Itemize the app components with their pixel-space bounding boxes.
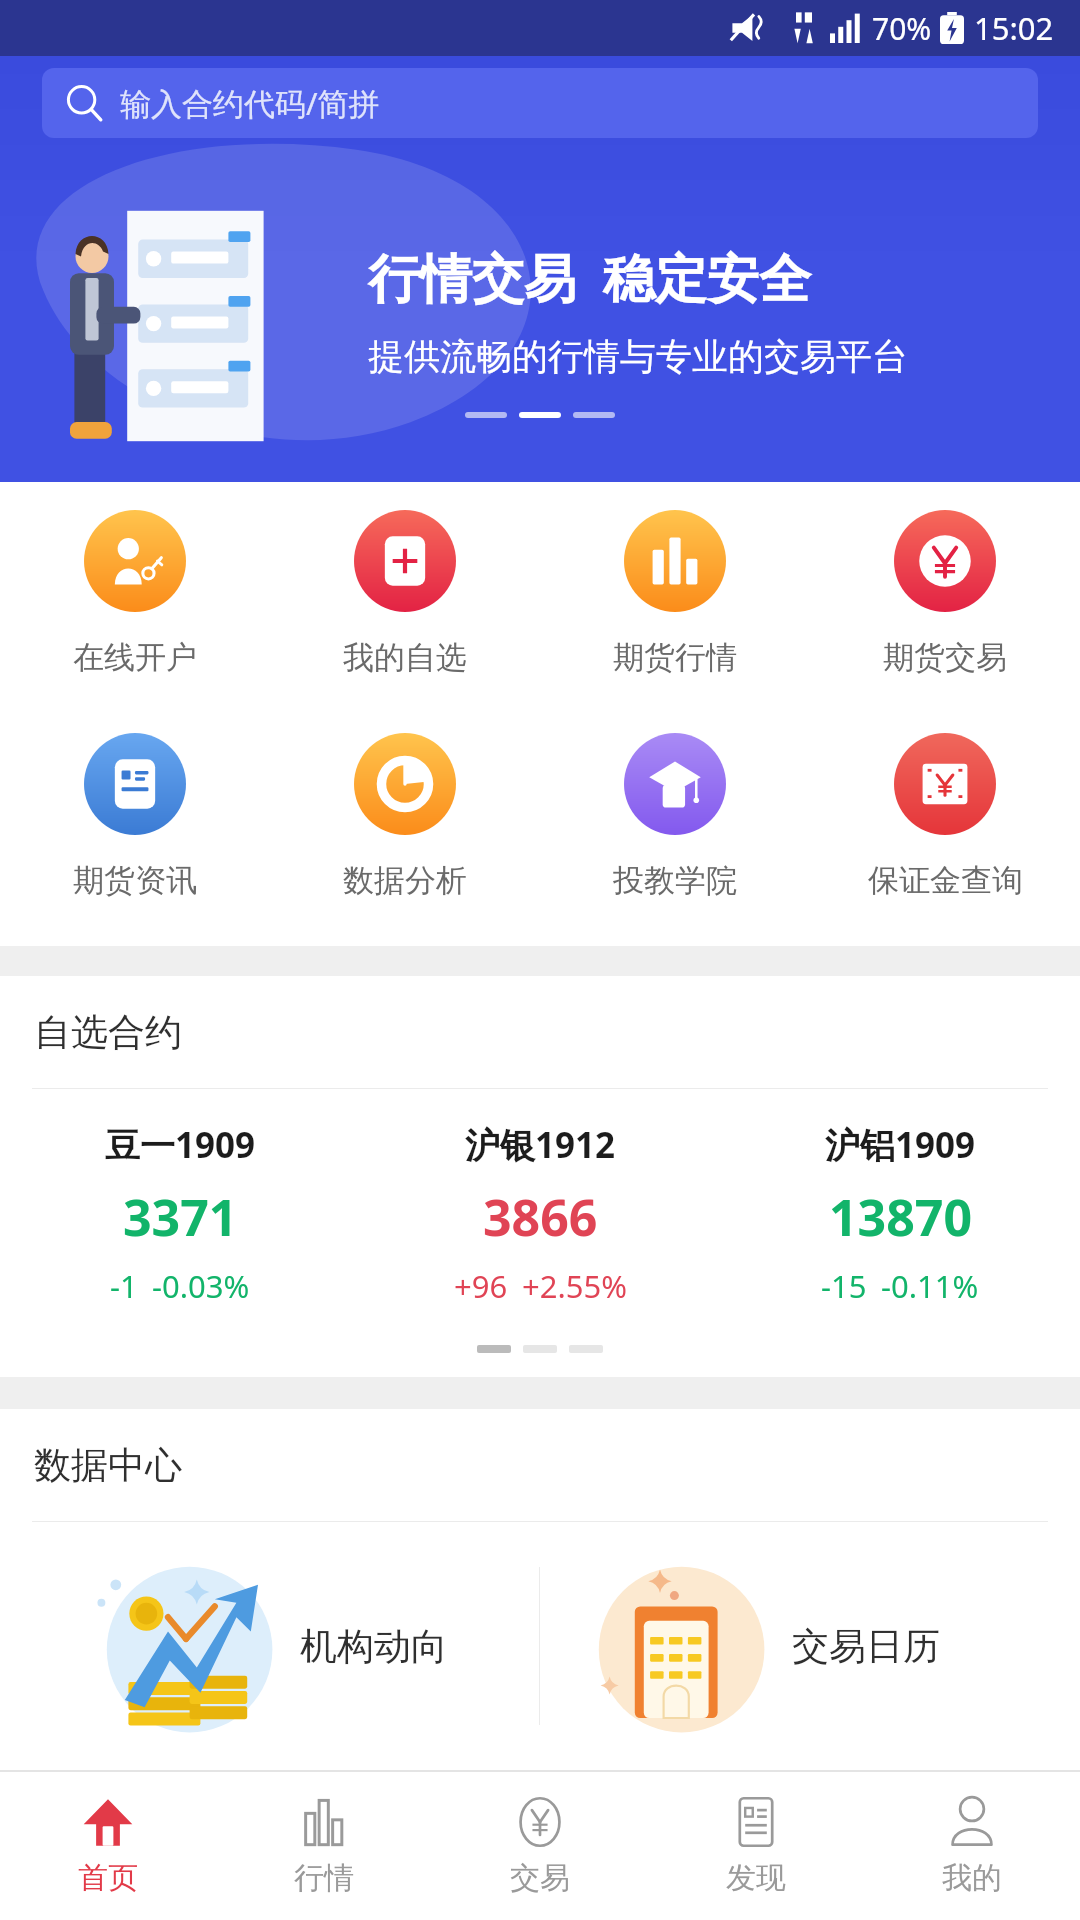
staticText: 机构动向 [300, 1623, 448, 1670]
staticText: 沪银1912 [465, 1121, 616, 1169]
staticText: 交易 [510, 1859, 570, 1897]
button[interactable]: 交易日历 [540, 1522, 1080, 1770]
staticText: 投教学院 [613, 861, 737, 900]
button[interactable]: 沪铝1909 [720, 1117, 1080, 1311]
button[interactable]: 机构动向 [0, 1522, 539, 1770]
button[interactable]: 豆一1909 [0, 1117, 360, 1311]
button[interactable]: 投教学院 [540, 727, 810, 906]
button[interactable]: 数据分析 [270, 727, 540, 906]
staticText: 首页 [78, 1859, 138, 1897]
staticText: 期货交易 [883, 638, 1007, 677]
staticText: 期货行情 [613, 638, 737, 677]
staticText: 发现 [726, 1859, 786, 1897]
staticText: 交易日历 [792, 1623, 940, 1670]
button[interactable]: 我的 [864, 1772, 1080, 1920]
staticText: -0.11% [881, 1265, 979, 1307]
button[interactable]: 行情 [216, 1772, 432, 1920]
staticText: 提供流畅的行情与专业的交易平台 [368, 334, 908, 379]
button[interactable]: 我的自选 [270, 504, 540, 683]
button[interactable]: 交易 [432, 1772, 648, 1920]
staticText: +96 [454, 1265, 508, 1307]
button[interactable]: 发现 [648, 1772, 864, 1920]
staticText: 行情交易 稳定安全 [368, 241, 812, 312]
staticText: 我的 [942, 1859, 1002, 1897]
staticText: 3866 [483, 1183, 598, 1251]
staticText: 我的自选 [343, 638, 467, 677]
button[interactable]: 在线开户 [0, 504, 270, 683]
staticText: 70% [872, 8, 932, 49]
staticText: -1 [110, 1265, 138, 1307]
staticText: 沪铝1909 [825, 1121, 976, 1169]
staticText: 输入合约代码/简拼 [120, 82, 380, 124]
staticText: -15 [821, 1265, 867, 1307]
staticText: 在线开户 [73, 638, 197, 677]
staticText: +2.55% [522, 1265, 627, 1307]
staticText: 3371 [123, 1183, 238, 1251]
staticText: 数据中心 [34, 1442, 182, 1489]
staticText: 行情 [294, 1859, 354, 1897]
staticText: 保证金查询 [868, 861, 1023, 900]
button[interactable]: 沪银1912 [360, 1117, 720, 1311]
button[interactable]: 保证金查询 [810, 727, 1080, 906]
staticText: 数据分析 [343, 861, 467, 900]
button[interactable]: 期货行情 [540, 504, 810, 683]
button[interactable]: 首页 [0, 1772, 216, 1920]
staticText: -0.03% [152, 1265, 250, 1307]
button[interactable]: 期货交易 [810, 504, 1080, 683]
staticText: 豆一1909 [105, 1121, 256, 1169]
staticText: 期货资讯 [73, 861, 197, 900]
staticText: 自选合约 [34, 1009, 182, 1056]
staticText: 15:02 [974, 7, 1054, 49]
button[interactable]: 期货资讯 [0, 727, 270, 906]
staticText: 13870 [829, 1183, 972, 1251]
button[interactable]: 输入合约代码/简拼 [42, 68, 1038, 138]
